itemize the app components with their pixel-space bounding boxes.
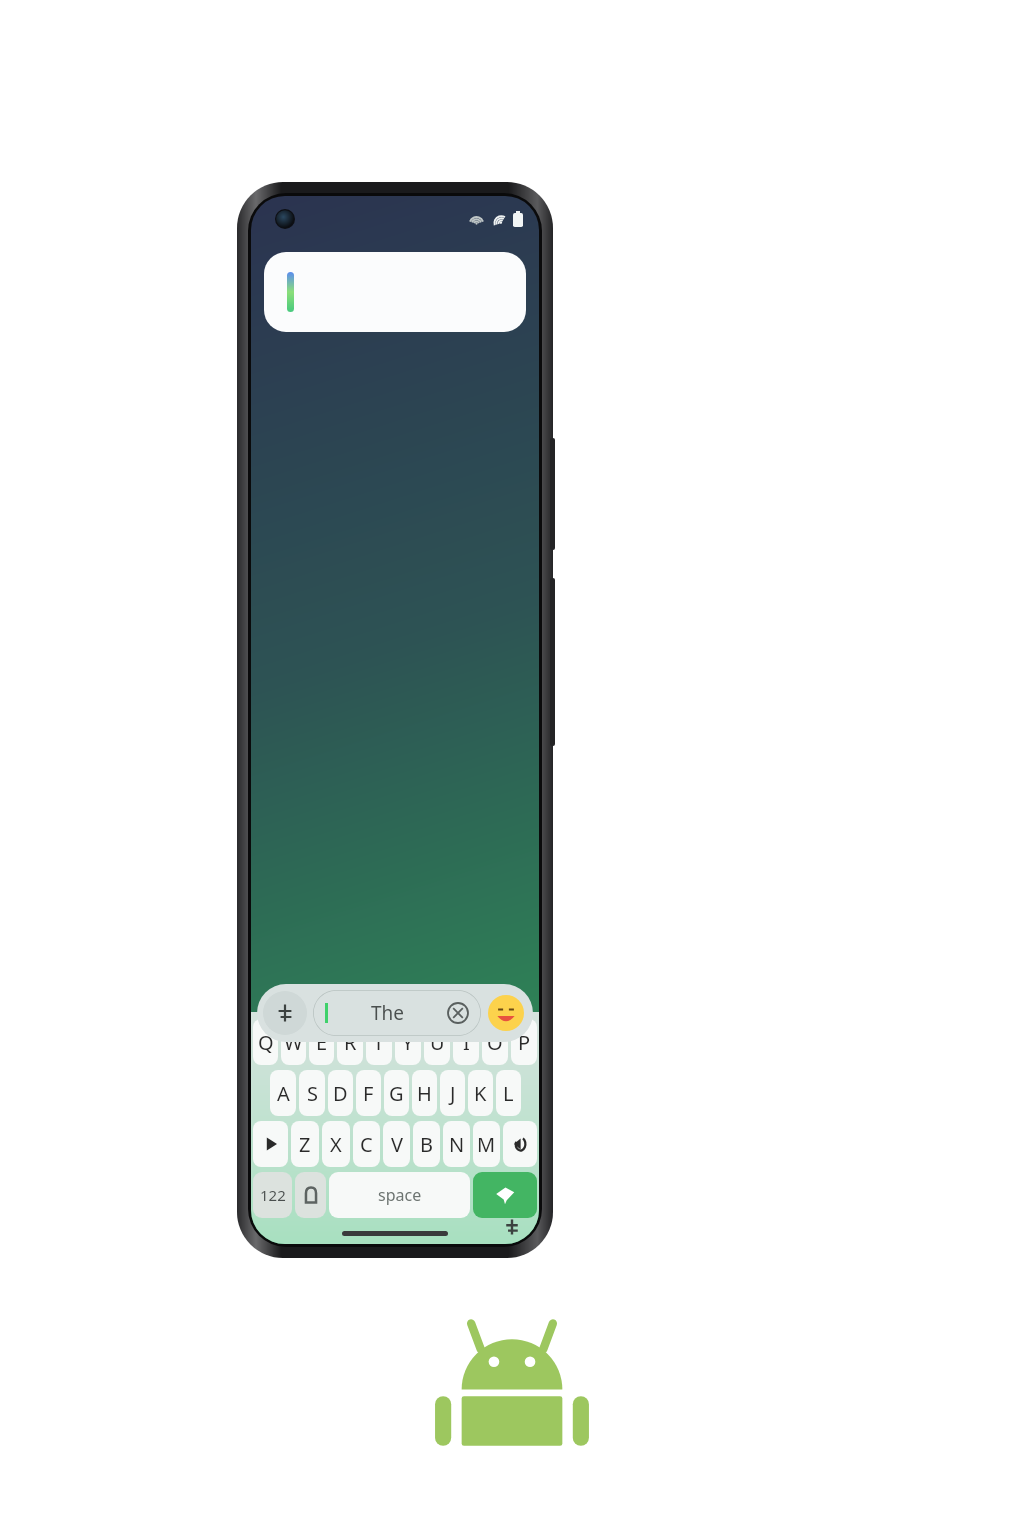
staticText: R [344,1029,357,1056]
button[interactable]: T [366,1019,392,1065]
button[interactable]: M [473,1121,500,1167]
staticText: T [373,1029,385,1056]
staticText: Z [299,1131,311,1158]
button[interactable]: Input settings [503,1218,521,1236]
button[interactable]: W [281,1019,306,1065]
staticText: J [450,1080,456,1107]
button[interactable]: Q [253,1019,278,1065]
button[interactable]: 122 [253,1172,292,1218]
staticText: C [360,1131,373,1158]
button[interactable]: Clear text [447,1002,469,1024]
button[interactable]: K [468,1070,493,1116]
staticText: N [449,1131,465,1158]
button[interactable]: L [496,1070,521,1116]
button[interactable]: S [299,1070,325,1116]
staticText: L [503,1080,514,1107]
staticText: E [316,1029,328,1056]
button[interactable]: Enter [473,1172,537,1218]
button[interactable]: The [313,990,481,1036]
staticText: F [363,1080,374,1107]
staticText: B [420,1131,433,1158]
staticText: X [330,1131,342,1158]
button[interactable]: C [353,1121,380,1167]
button[interactable]: Keyboard settings [263,991,307,1035]
staticText: M [477,1131,496,1158]
staticText: Y [402,1029,414,1056]
button[interactable]: N [443,1121,470,1167]
button[interactable]: O [482,1019,508,1065]
button[interactable]: Language [295,1172,326,1218]
staticText: H [417,1080,432,1107]
button[interactable]: B [413,1121,440,1167]
staticText: space [378,1184,422,1206]
staticText: O [487,1029,503,1056]
staticText: The [328,1000,447,1026]
staticText: S [307,1080,318,1107]
button[interactable]: Emoji [488,995,524,1031]
button[interactable]: D [328,1070,353,1116]
button[interactable]: H [412,1070,437,1116]
staticText: G [389,1080,404,1107]
staticText: Q [258,1029,274,1056]
button[interactable]: I [453,1019,479,1065]
button[interactable]: P [511,1019,537,1065]
button[interactable]: A [270,1070,296,1116]
button[interactable]: F [356,1070,381,1116]
button[interactable]: U [424,1019,450,1065]
staticText: U [430,1029,445,1056]
button[interactable]: X [322,1121,350,1167]
button[interactable]: Shift [253,1121,288,1167]
staticText: D [333,1080,348,1107]
staticText: P [518,1029,531,1056]
button[interactable] [264,252,526,332]
button[interactable]: Backspace [503,1121,537,1167]
button[interactable]: G [384,1070,409,1116]
staticText: I [463,1029,470,1056]
staticText: A [277,1080,290,1107]
staticText: 122 [260,1185,286,1205]
button[interactable]: V [383,1121,410,1167]
staticText: W [284,1029,303,1056]
button[interactable]: Y [395,1019,421,1065]
staticText: K [474,1080,487,1107]
button[interactable]: space [329,1172,470,1218]
button[interactable]: Z [291,1121,319,1167]
button[interactable]: E [309,1019,334,1065]
button[interactable]: R [337,1019,363,1065]
button[interactable]: J [440,1070,465,1116]
staticText: V [391,1131,403,1158]
